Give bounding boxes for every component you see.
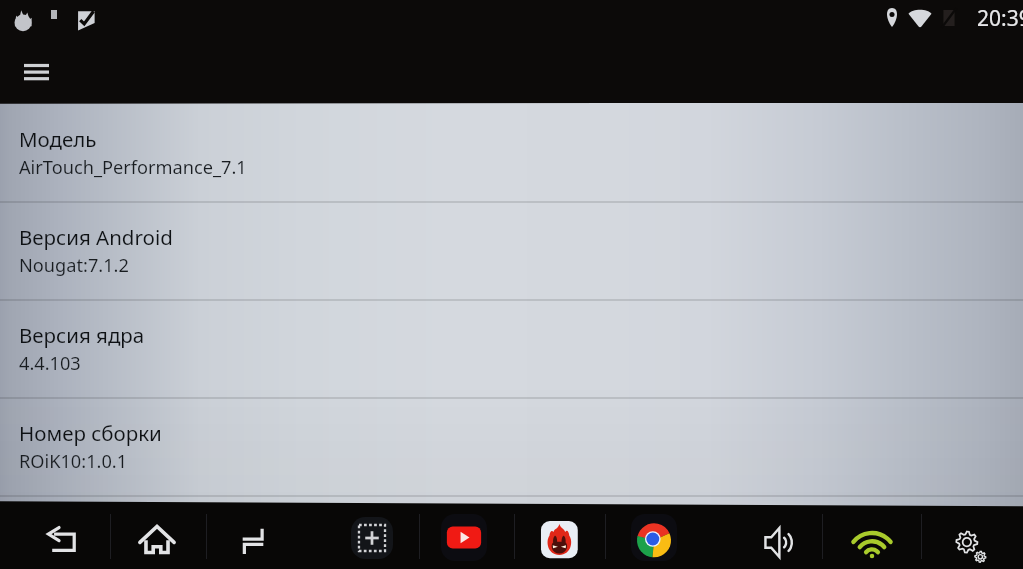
staticText: AirTouch_Performance_7.1 [19, 155, 247, 180]
staticText: Модель [19, 125, 97, 153]
button[interactable]: Settings [938, 503, 1006, 567]
button[interactable]: Screenshot [338, 503, 406, 567]
staticText: Nougat:7.1.2 [19, 253, 129, 278]
staticText: Номер сборки [19, 419, 162, 447]
staticText: 4.4.103 [19, 351, 81, 376]
staticText: 20:39 [977, 4, 1023, 33]
button[interactable]: Volume [744, 503, 812, 567]
staticText: ROiK10:1.0.1 [19, 449, 128, 474]
button[interactable]: Chrome [620, 503, 688, 567]
staticText: Версия ядра [19, 321, 145, 349]
button[interactable]: Модель [0, 103, 1023, 201]
button[interactable]: Recent apps [219, 503, 287, 567]
staticText: Версия Android [19, 223, 173, 251]
button[interactable]: Версия ядра [0, 300, 1023, 397]
button[interactable]: Номер сборки [0, 398, 1023, 495]
button[interactable]: AnTuTu Benchmark [524, 503, 592, 567]
button[interactable]: Версия Android [0, 202, 1023, 299]
button[interactable]: YouTube [430, 503, 498, 567]
button[interactable]: Home [123, 503, 191, 567]
button[interactable]: Back [27, 503, 95, 567]
button[interactable]: Wi-Fi [838, 503, 906, 567]
button[interactable]: Open navigation menu [12, 49, 60, 97]
